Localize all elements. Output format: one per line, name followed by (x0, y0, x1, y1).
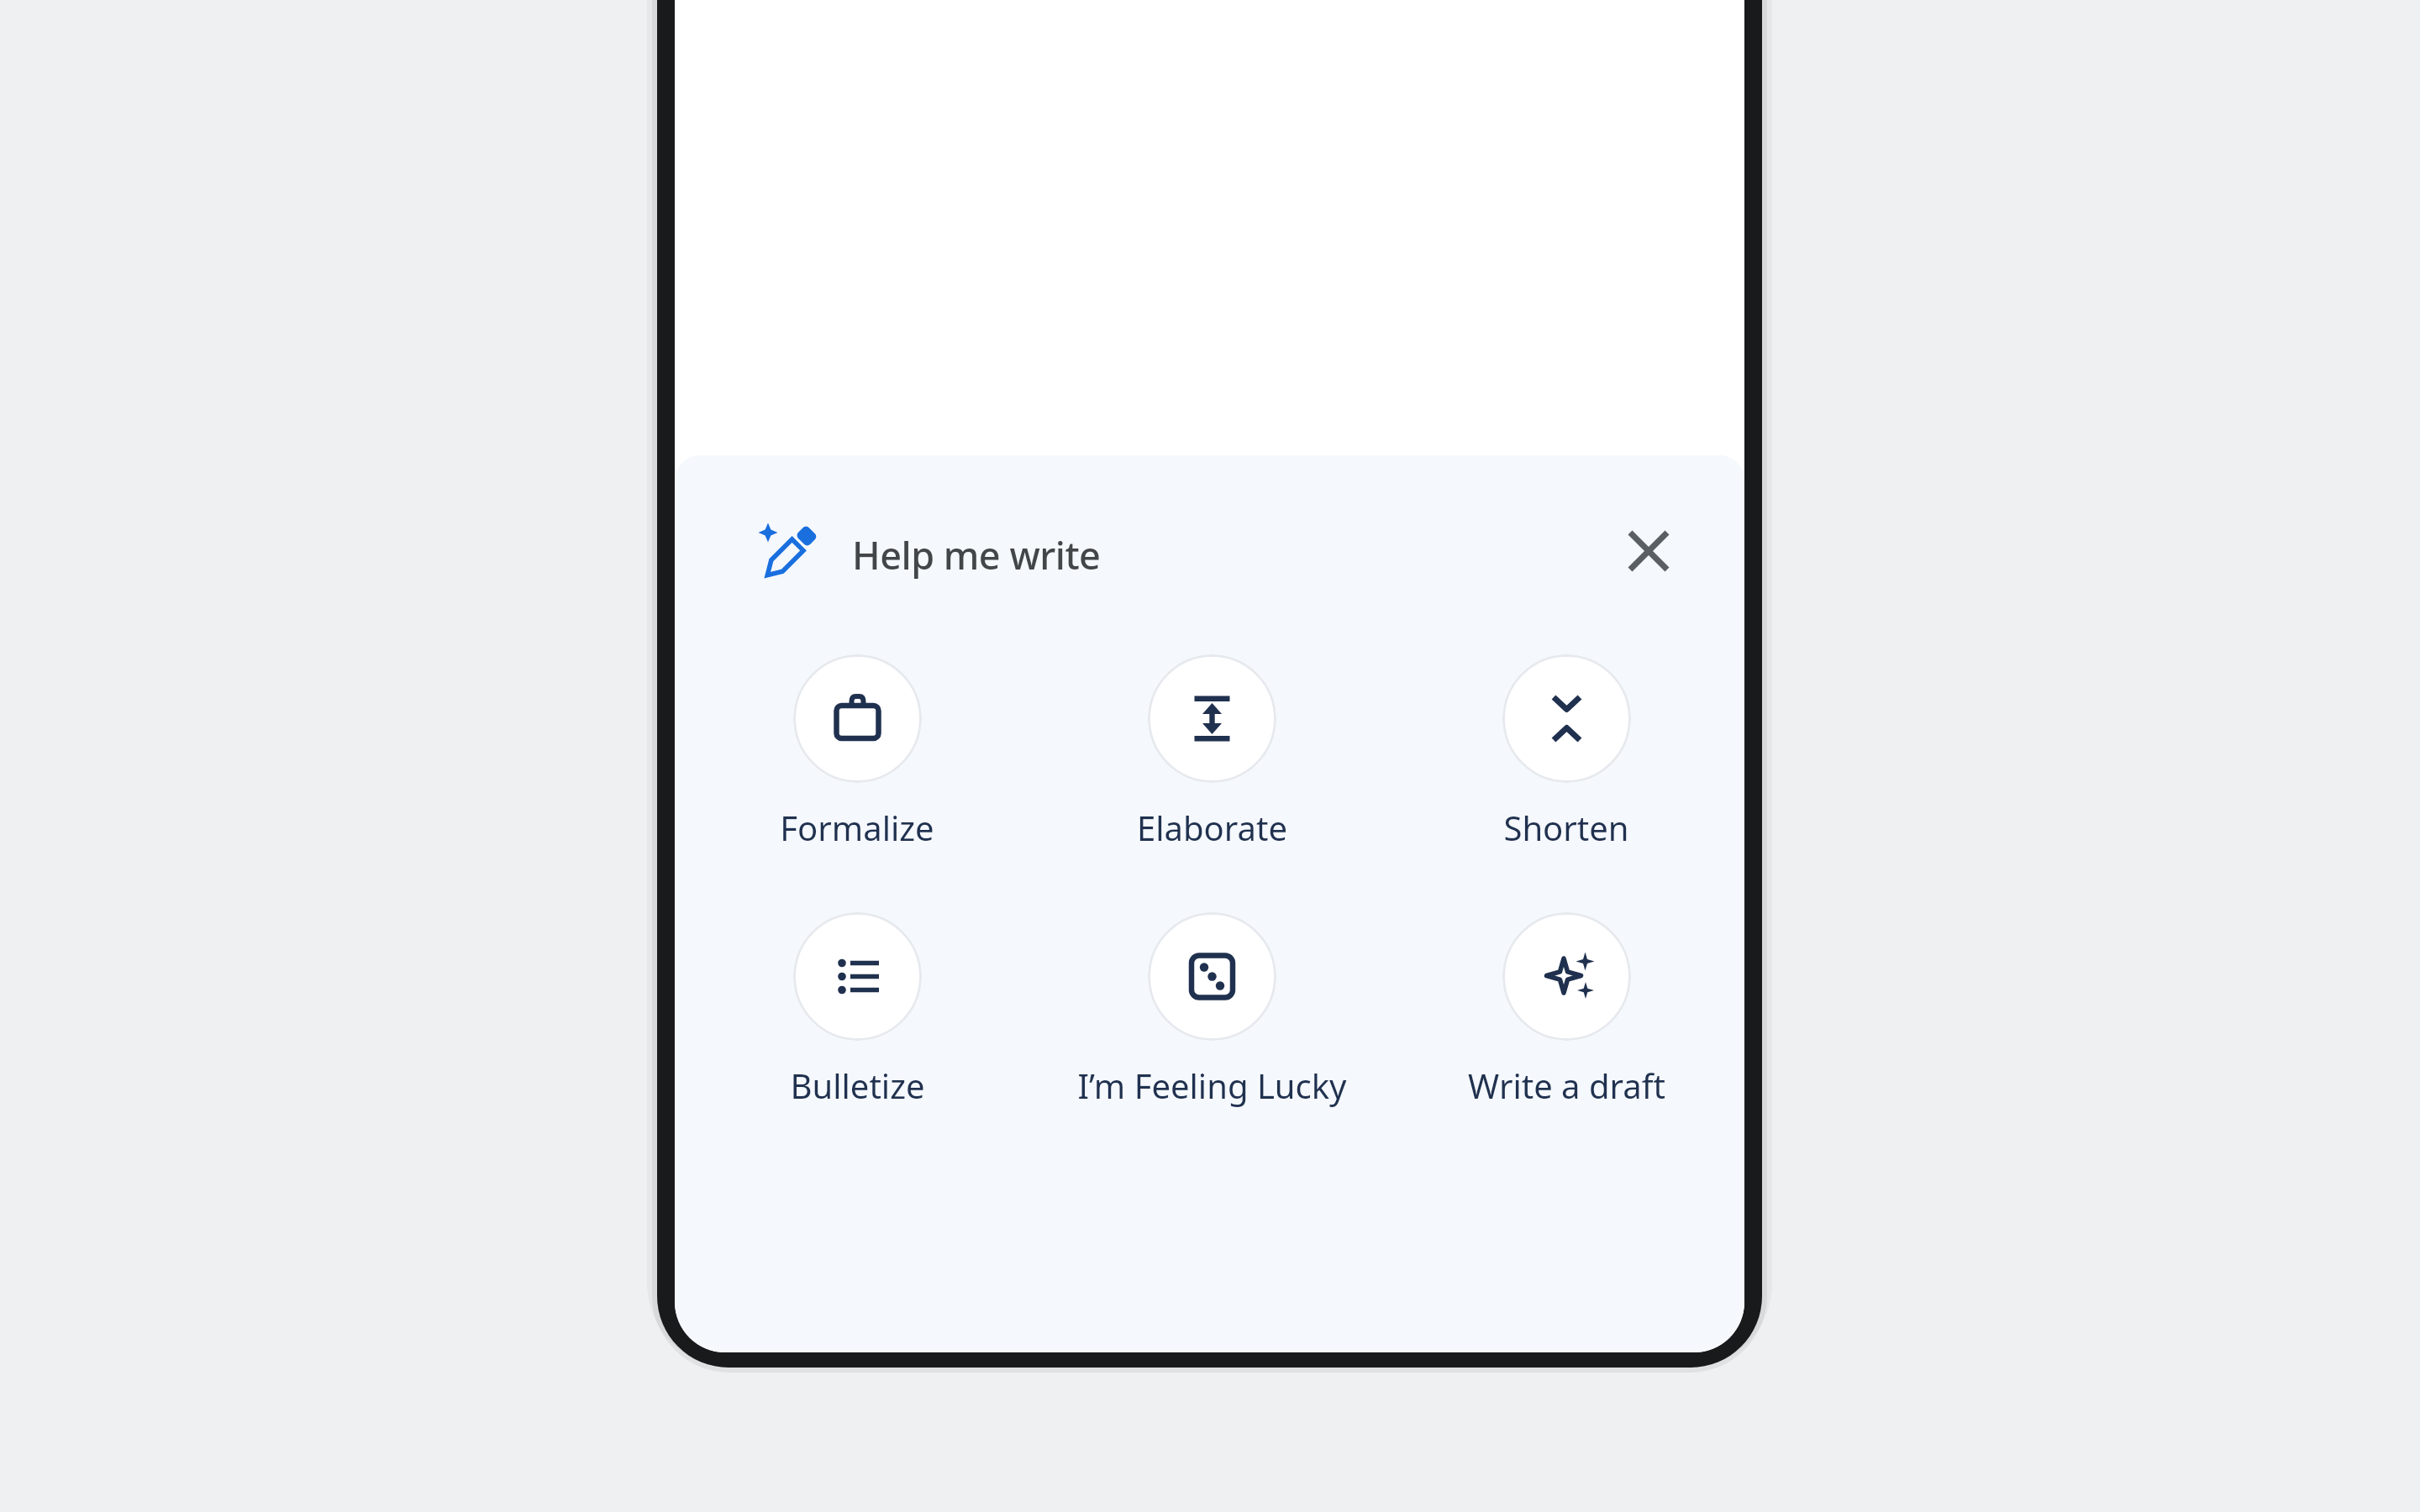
button[interactable]: Shorten (1390, 654, 1743, 856)
staticText: Help me write (852, 529, 1101, 580)
staticText: Elaborate (1137, 805, 1287, 850)
button[interactable]: Formalize (681, 654, 1034, 856)
staticText: Bulletize (790, 1063, 925, 1108)
button[interactable]: Write a draft (1390, 912, 1743, 1114)
button[interactable] (1607, 509, 1691, 593)
button[interactable]: Elaborate (1035, 654, 1388, 856)
button[interactable]: I’m Feeling Lucky (1035, 912, 1388, 1114)
staticText: Shorten (1503, 805, 1629, 850)
button[interactable]: Bulletize (681, 912, 1034, 1114)
staticText: I’m Feeling Lucky (1077, 1063, 1347, 1108)
staticText: Formalize (780, 805, 934, 850)
staticText: Write a draft (1468, 1063, 1665, 1108)
